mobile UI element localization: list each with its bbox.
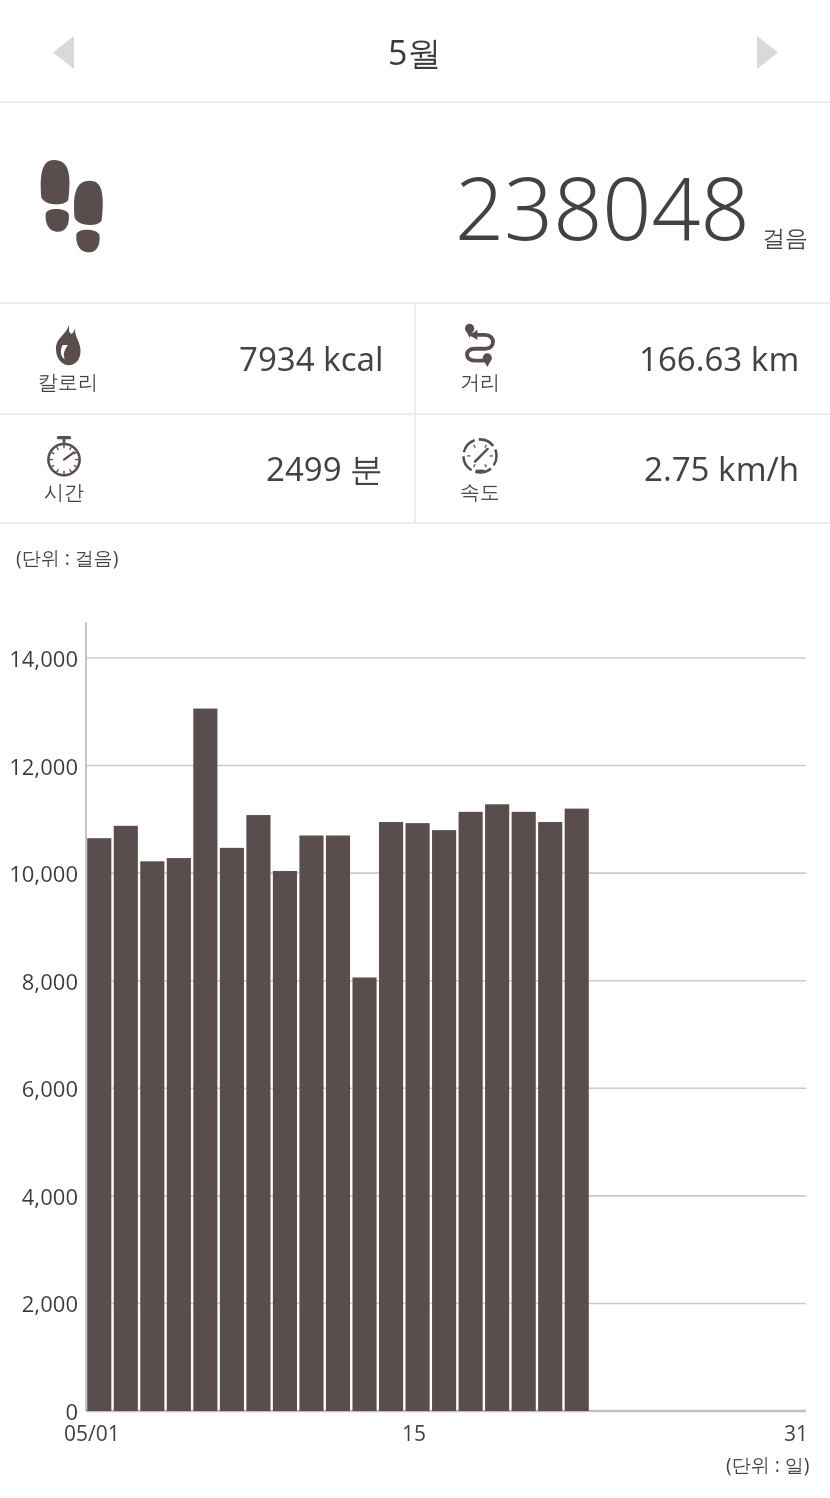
- staticText: 4,000: [0, 1181, 78, 1211]
- button[interactable]: 시간: [0, 415, 414, 522]
- staticText: 2.75 km/h: [644, 446, 800, 491]
- staticText: (단위 : 일): [726, 1452, 810, 1478]
- staticText: 8,000: [0, 966, 78, 996]
- button[interactable]: Next month: [728, 13, 806, 91]
- staticText: 238048: [455, 148, 750, 265]
- staticText: 5월: [388, 29, 442, 75]
- staticText: 2499 분: [266, 446, 384, 491]
- staticText: 칼로리: [38, 370, 98, 395]
- button[interactable]: 칼로리: [0, 304, 414, 413]
- staticText: 10,000: [0, 858, 78, 888]
- button[interactable]: 속도: [416, 415, 830, 522]
- staticText: 거리: [460, 370, 500, 395]
- button[interactable]: 238048: [0, 0, 830, 302]
- staticText: 15: [402, 1419, 427, 1448]
- staticText: 2,000: [0, 1288, 78, 1318]
- staticText: 14,000: [0, 643, 78, 673]
- staticText: 05/01: [64, 1419, 120, 1448]
- button[interactable]: Previous month: [24, 13, 102, 91]
- staticText: 시간: [44, 480, 84, 505]
- staticText: 6,000: [0, 1073, 78, 1103]
- staticText: 속도: [460, 480, 500, 505]
- staticText: 7934 kcal: [239, 336, 384, 381]
- staticText: 0: [0, 1396, 78, 1426]
- staticText: (단위 : 걸음): [16, 545, 119, 571]
- staticText: 12,000: [0, 751, 78, 781]
- staticText: 31: [784, 1419, 809, 1448]
- staticText: 걸음: [762, 224, 808, 253]
- staticText: 166.63 km: [639, 336, 800, 381]
- button[interactable]: 거리: [416, 304, 830, 413]
